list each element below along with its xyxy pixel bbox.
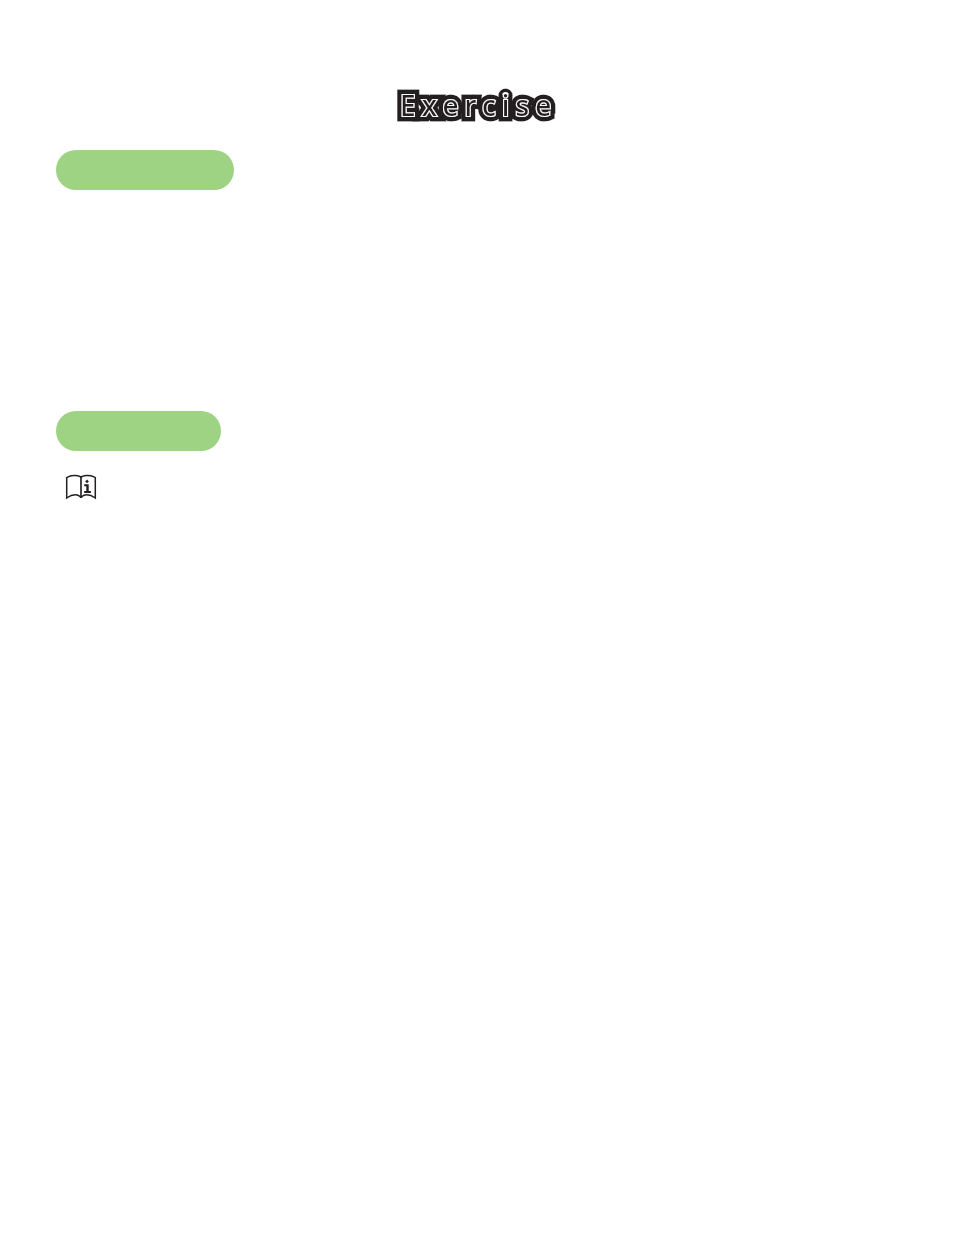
staticText: Exercise — [400, 86, 558, 124]
staticText: Exercise — [400, 86, 558, 124]
staticText: Exercise — [400, 86, 558, 124]
button[interactable]: Consult instructions for use — [66, 474, 96, 499]
button[interactable]: Start exercise — [56, 150, 234, 190]
button[interactable]: Exercise details — [56, 411, 221, 451]
